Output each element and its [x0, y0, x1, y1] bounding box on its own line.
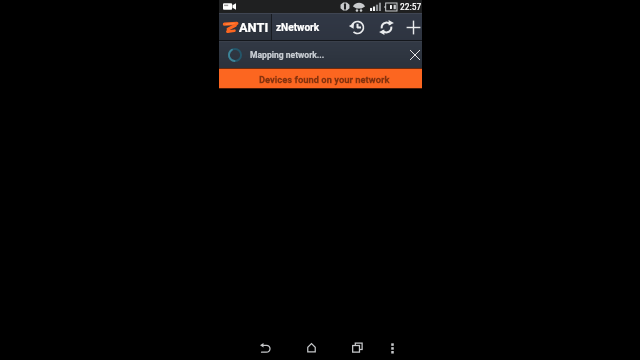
staticText: ANTI — [239, 20, 269, 35]
button[interactable]: Mapping network... — [219, 41, 422, 68]
button[interactable]: Devices found on your network — [219, 68, 422, 89]
staticText: 22:57 — [400, 1, 422, 12]
button[interactable]: Back — [252, 334, 278, 360]
staticText: zNetwork — [276, 22, 320, 34]
staticText: Mapping network... — [250, 50, 325, 60]
button[interactable]: History — [344, 13, 370, 41]
button[interactable]: Recent apps — [344, 334, 370, 360]
button[interactable]: More options — [379, 334, 405, 360]
button[interactable]: Close — [405, 41, 425, 68]
staticText: Devices found on your network — [259, 74, 390, 85]
button[interactable]: ANTI — [219, 13, 271, 41]
button[interactable]: Home — [298, 334, 324, 360]
button[interactable]: Add network — [400, 13, 426, 41]
button[interactable]: Refresh — [373, 13, 399, 41]
